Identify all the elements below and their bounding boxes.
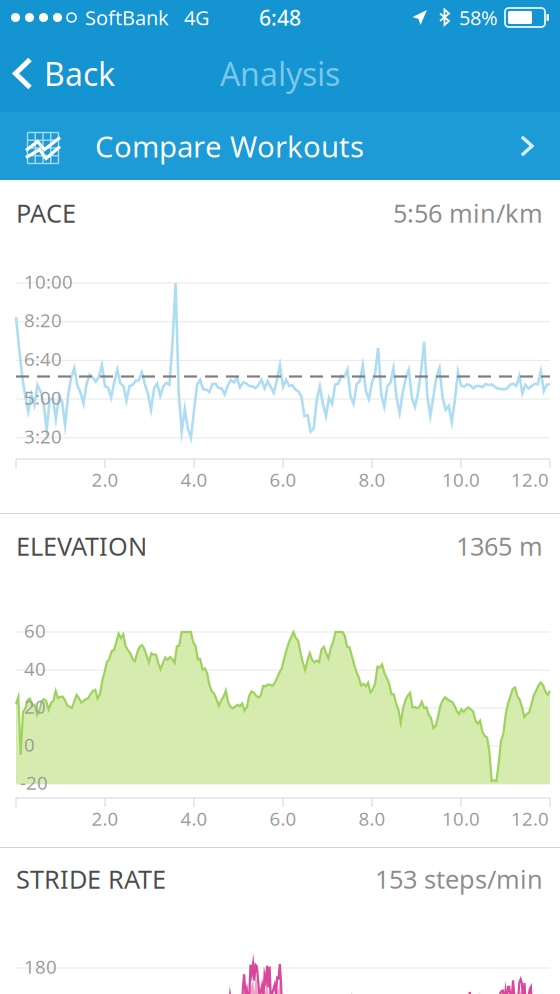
staticText: 153 steps/min	[375, 862, 543, 896]
staticText: 2.0	[91, 806, 118, 831]
staticText: 8:20	[24, 308, 62, 332]
staticText: 10.0	[442, 467, 480, 492]
staticText: STRIDE RATE	[16, 862, 166, 896]
staticText: Compare Workouts	[95, 126, 364, 165]
staticText: PACE	[16, 196, 76, 230]
staticText: 10.0	[442, 806, 480, 831]
staticText: 6:48	[259, 3, 301, 32]
staticText: 1365 m	[456, 529, 543, 563]
staticText: 4.0	[180, 806, 207, 831]
staticText: 4.0	[180, 467, 207, 492]
staticText: 20	[24, 694, 46, 719]
staticText: 8.0	[358, 467, 385, 492]
staticText: SoftBank	[85, 4, 169, 31]
staticText: 60	[24, 618, 46, 643]
staticText: 180	[24, 954, 57, 979]
staticText: 5:00	[24, 385, 62, 410]
staticText: 0	[24, 732, 35, 757]
staticText: Back	[44, 52, 115, 95]
staticText: 10:00	[24, 269, 73, 294]
staticText: 6.0	[269, 806, 296, 831]
staticText: 6:40	[24, 346, 62, 371]
staticText: 40	[24, 656, 46, 681]
button[interactable]: Compare Workouts	[0, 112, 560, 180]
staticText: -20	[20, 770, 48, 795]
staticText: 58%	[459, 4, 498, 31]
staticText: 3:20	[24, 424, 62, 449]
staticText: ELEVATION	[16, 529, 147, 563]
staticText: Analysis	[220, 52, 340, 95]
staticText: 6.0	[269, 467, 296, 492]
staticText: 5:56 min/km	[393, 196, 543, 230]
staticText: 2.0	[91, 467, 118, 492]
staticText: 12.0	[511, 806, 549, 831]
button[interactable]: Back	[0, 35, 127, 112]
staticText: 4G	[184, 4, 210, 31]
staticText: 8.0	[358, 806, 385, 831]
staticText: 12.0	[511, 467, 549, 492]
